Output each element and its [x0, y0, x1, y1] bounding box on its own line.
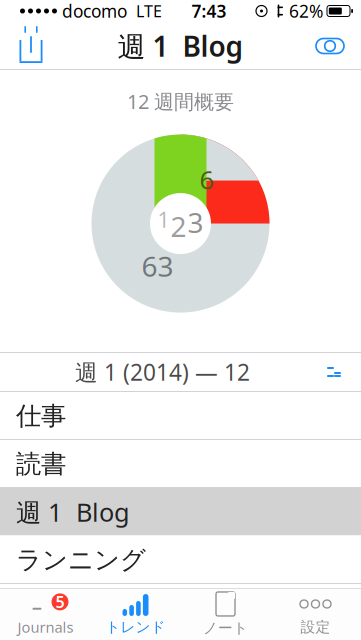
staticText: 2 — [170, 207, 186, 245]
staticText: 週 1 Blog — [117, 27, 243, 65]
button[interactable]: 5 — [0, 588, 90, 640]
staticText: 3 — [187, 203, 203, 241]
staticText: 1 — [157, 205, 169, 234]
button[interactable]: ランニング — [0, 536, 361, 584]
staticText: docomo — [62, 0, 127, 22]
staticText: 設定 — [300, 618, 330, 636]
button[interactable]: 読書 — [0, 440, 361, 488]
button[interactable]: Preview — [303, 22, 357, 70]
staticText: トレンド — [105, 618, 165, 636]
staticText: 読書 — [16, 448, 66, 479]
staticText: 63 — [141, 247, 173, 285]
button[interactable]: トレンド — [90, 588, 180, 640]
button[interactable]: 設定 — [270, 588, 360, 640]
staticText: LTE — [136, 0, 162, 22]
staticText: ノート — [203, 619, 248, 637]
button[interactable]: Share — [4, 22, 58, 70]
button[interactable]: 週 1 Blog — [0, 488, 361, 536]
staticText: 62% — [289, 0, 323, 22]
staticText: 週 1 (2014) — 12 — [75, 357, 250, 387]
staticText: 7:43 — [191, 0, 226, 22]
staticText: 6 — [199, 163, 213, 196]
button[interactable]: 週 1 (2014) — 12 — [0, 352, 361, 392]
staticText: ランニング — [16, 544, 146, 575]
staticText: 週 1 Blog — [16, 495, 130, 529]
staticText: 5 — [55, 591, 64, 612]
button[interactable]: 仕事 — [0, 392, 361, 440]
staticText: Journals — [17, 617, 73, 637]
staticText: 仕事 — [16, 400, 66, 431]
staticText: 12 週間概要 — [127, 88, 234, 115]
button[interactable]: ノート — [180, 588, 270, 640]
